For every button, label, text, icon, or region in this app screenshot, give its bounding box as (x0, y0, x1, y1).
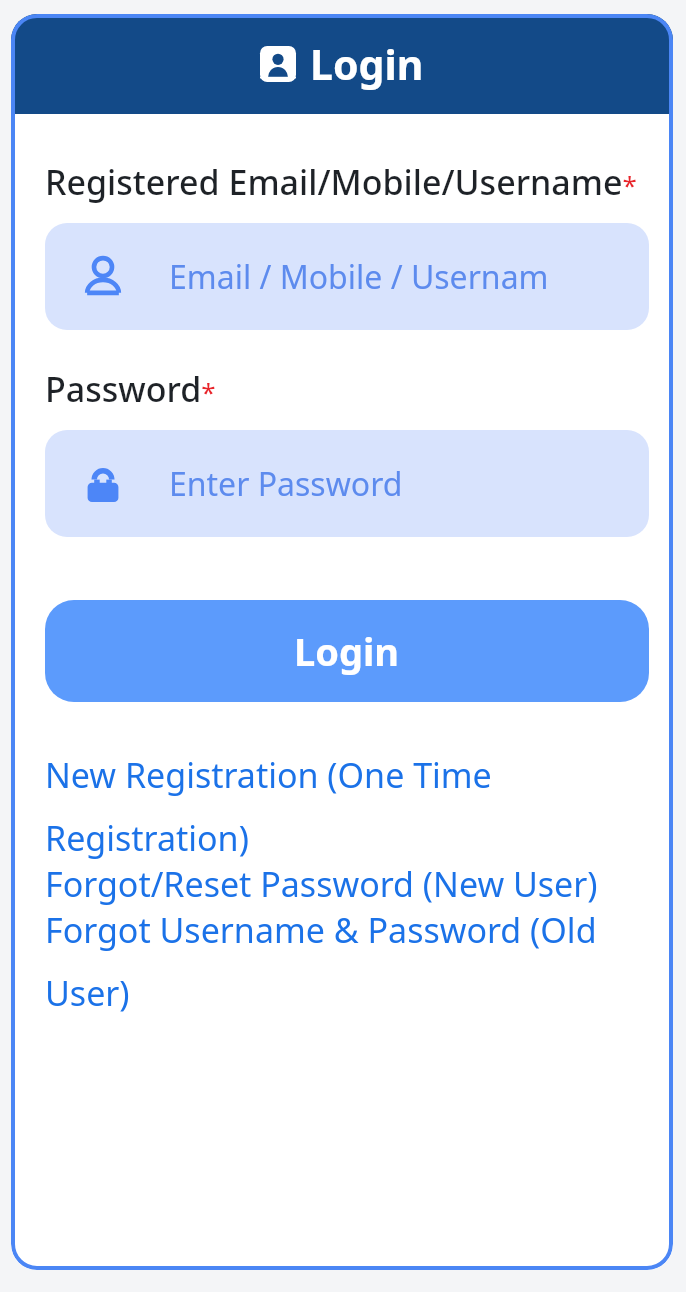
button[interactable]: Username (45, 223, 649, 330)
staticText: Forgot Username & Password (Old User) (45, 907, 649, 1016)
staticText: Password* (45, 366, 216, 412)
button[interactable]: Forgot/Reset Password (New User) (45, 861, 649, 907)
staticText: New Registration (One Time Registration) (45, 752, 649, 861)
button[interactable]: Login (45, 600, 649, 702)
button[interactable]: Password (45, 430, 649, 537)
other: Account badge (260, 46, 296, 82)
button[interactable]: Forgot Username & Password (Old User) (45, 907, 649, 1016)
staticText: Email / Mobile / Usernam (169, 255, 549, 299)
staticText: Login (310, 36, 424, 92)
button[interactable]: New Registration (One Time Registration) (45, 752, 649, 861)
staticText: Forgot/Reset Password (New User) (45, 861, 598, 907)
staticText: Enter Password (169, 462, 403, 506)
staticText: Login (294, 625, 400, 677)
staticText: Registered Email/Mobile/Username* (45, 159, 637, 205)
